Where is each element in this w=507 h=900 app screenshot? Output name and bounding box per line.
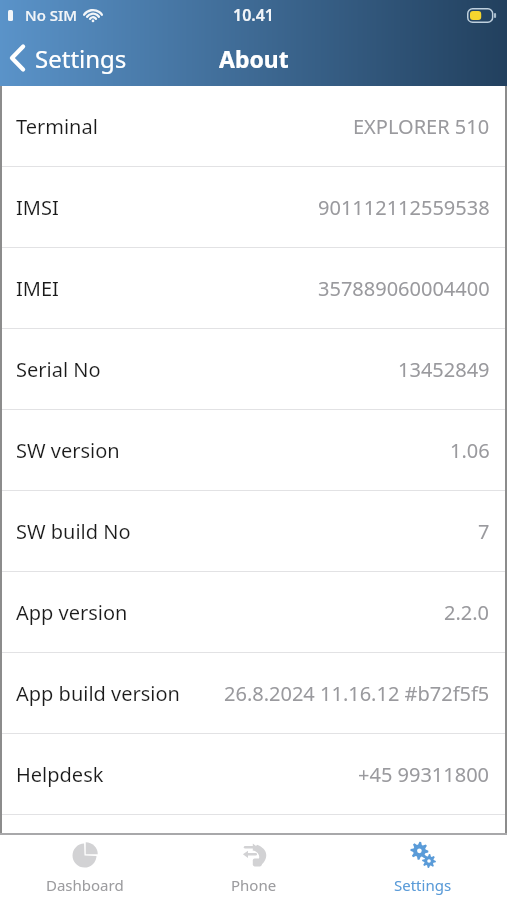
staticText: 1.06 xyxy=(450,437,490,464)
button[interactable]: Helpdesk xyxy=(0,734,507,814)
button[interactable]: SW build No xyxy=(0,491,507,571)
staticText: Terminal xyxy=(16,113,98,140)
staticText: Helpdesk xyxy=(16,761,104,788)
staticText: 357889060004400 xyxy=(318,275,490,302)
staticText: 901112112559538 xyxy=(318,194,490,221)
staticText: Settings xyxy=(35,42,127,75)
staticText: Settings xyxy=(394,875,452,895)
staticText: EXPLORER 510 xyxy=(353,113,490,140)
button[interactable]: App build version xyxy=(0,653,507,733)
staticText: App version xyxy=(16,599,128,626)
button[interactable]: IMSI xyxy=(0,167,507,247)
staticText: 10.41 xyxy=(233,4,275,26)
staticText: Serial No xyxy=(16,356,101,383)
staticText: 7 xyxy=(478,518,490,545)
button[interactable]: IMEI xyxy=(0,248,507,328)
staticText: App build version xyxy=(16,680,180,707)
staticText: 2.2.0 xyxy=(444,599,490,626)
staticText: Dashboard xyxy=(46,875,124,895)
staticText: SW build No xyxy=(16,518,131,545)
staticText: SW version xyxy=(16,437,120,464)
button[interactable]: App version xyxy=(0,572,507,652)
button[interactable]: Serial No xyxy=(0,329,507,409)
button[interactable]: Settings xyxy=(0,30,141,86)
staticText: 13452849 xyxy=(398,356,490,383)
staticText: 26.8.2024 11.16.12 #b72f5f5 xyxy=(224,680,490,707)
staticText: IMEI xyxy=(16,275,59,302)
button[interactable]: Phone xyxy=(169,835,338,900)
staticText: Phone xyxy=(231,875,277,895)
staticText: No SIM xyxy=(25,5,78,25)
button[interactable]: Settings xyxy=(338,835,507,900)
staticText: About xyxy=(219,43,289,74)
staticText: +45 99311800 xyxy=(358,761,490,788)
button[interactable]: Dashboard xyxy=(0,835,169,900)
button[interactable] xyxy=(0,815,507,833)
button[interactable]: Terminal xyxy=(0,86,507,166)
staticText: IMSI xyxy=(16,194,59,221)
button[interactable]: SW version xyxy=(0,410,507,490)
